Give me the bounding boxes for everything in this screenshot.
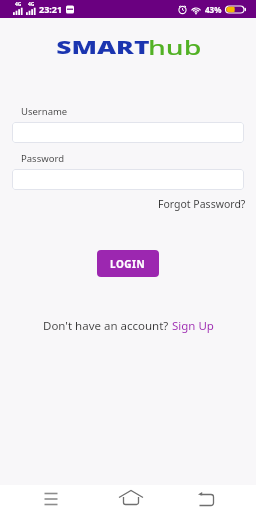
- staticText: Don't have an account?: [43, 318, 172, 334]
- button[interactable]: Don't have an account?: [43, 318, 214, 334]
- staticText: Sign Up: [172, 318, 214, 334]
- button[interactable]: Forgot Password?: [158, 197, 246, 211]
- staticText: LOGIN: [110, 257, 146, 271]
- staticText: Password: [21, 152, 64, 165]
- button[interactable]: [40, 488, 61, 509]
- staticText: 43%: [205, 4, 222, 15]
- button[interactable]: [193, 488, 217, 512]
- button[interactable]: [12, 122, 244, 143]
- staticText: Username: [21, 105, 68, 118]
- button[interactable]: LOGIN: [97, 250, 159, 277]
- button[interactable]: [12, 169, 244, 190]
- staticText: hub: [148, 35, 202, 61]
- button[interactable]: [117, 486, 144, 512]
- staticText: SMART: [56, 36, 151, 59]
- staticText: 23:21: [39, 3, 63, 15]
- staticText: 4G: [28, 1, 35, 8]
- staticText: 4G: [15, 1, 22, 8]
